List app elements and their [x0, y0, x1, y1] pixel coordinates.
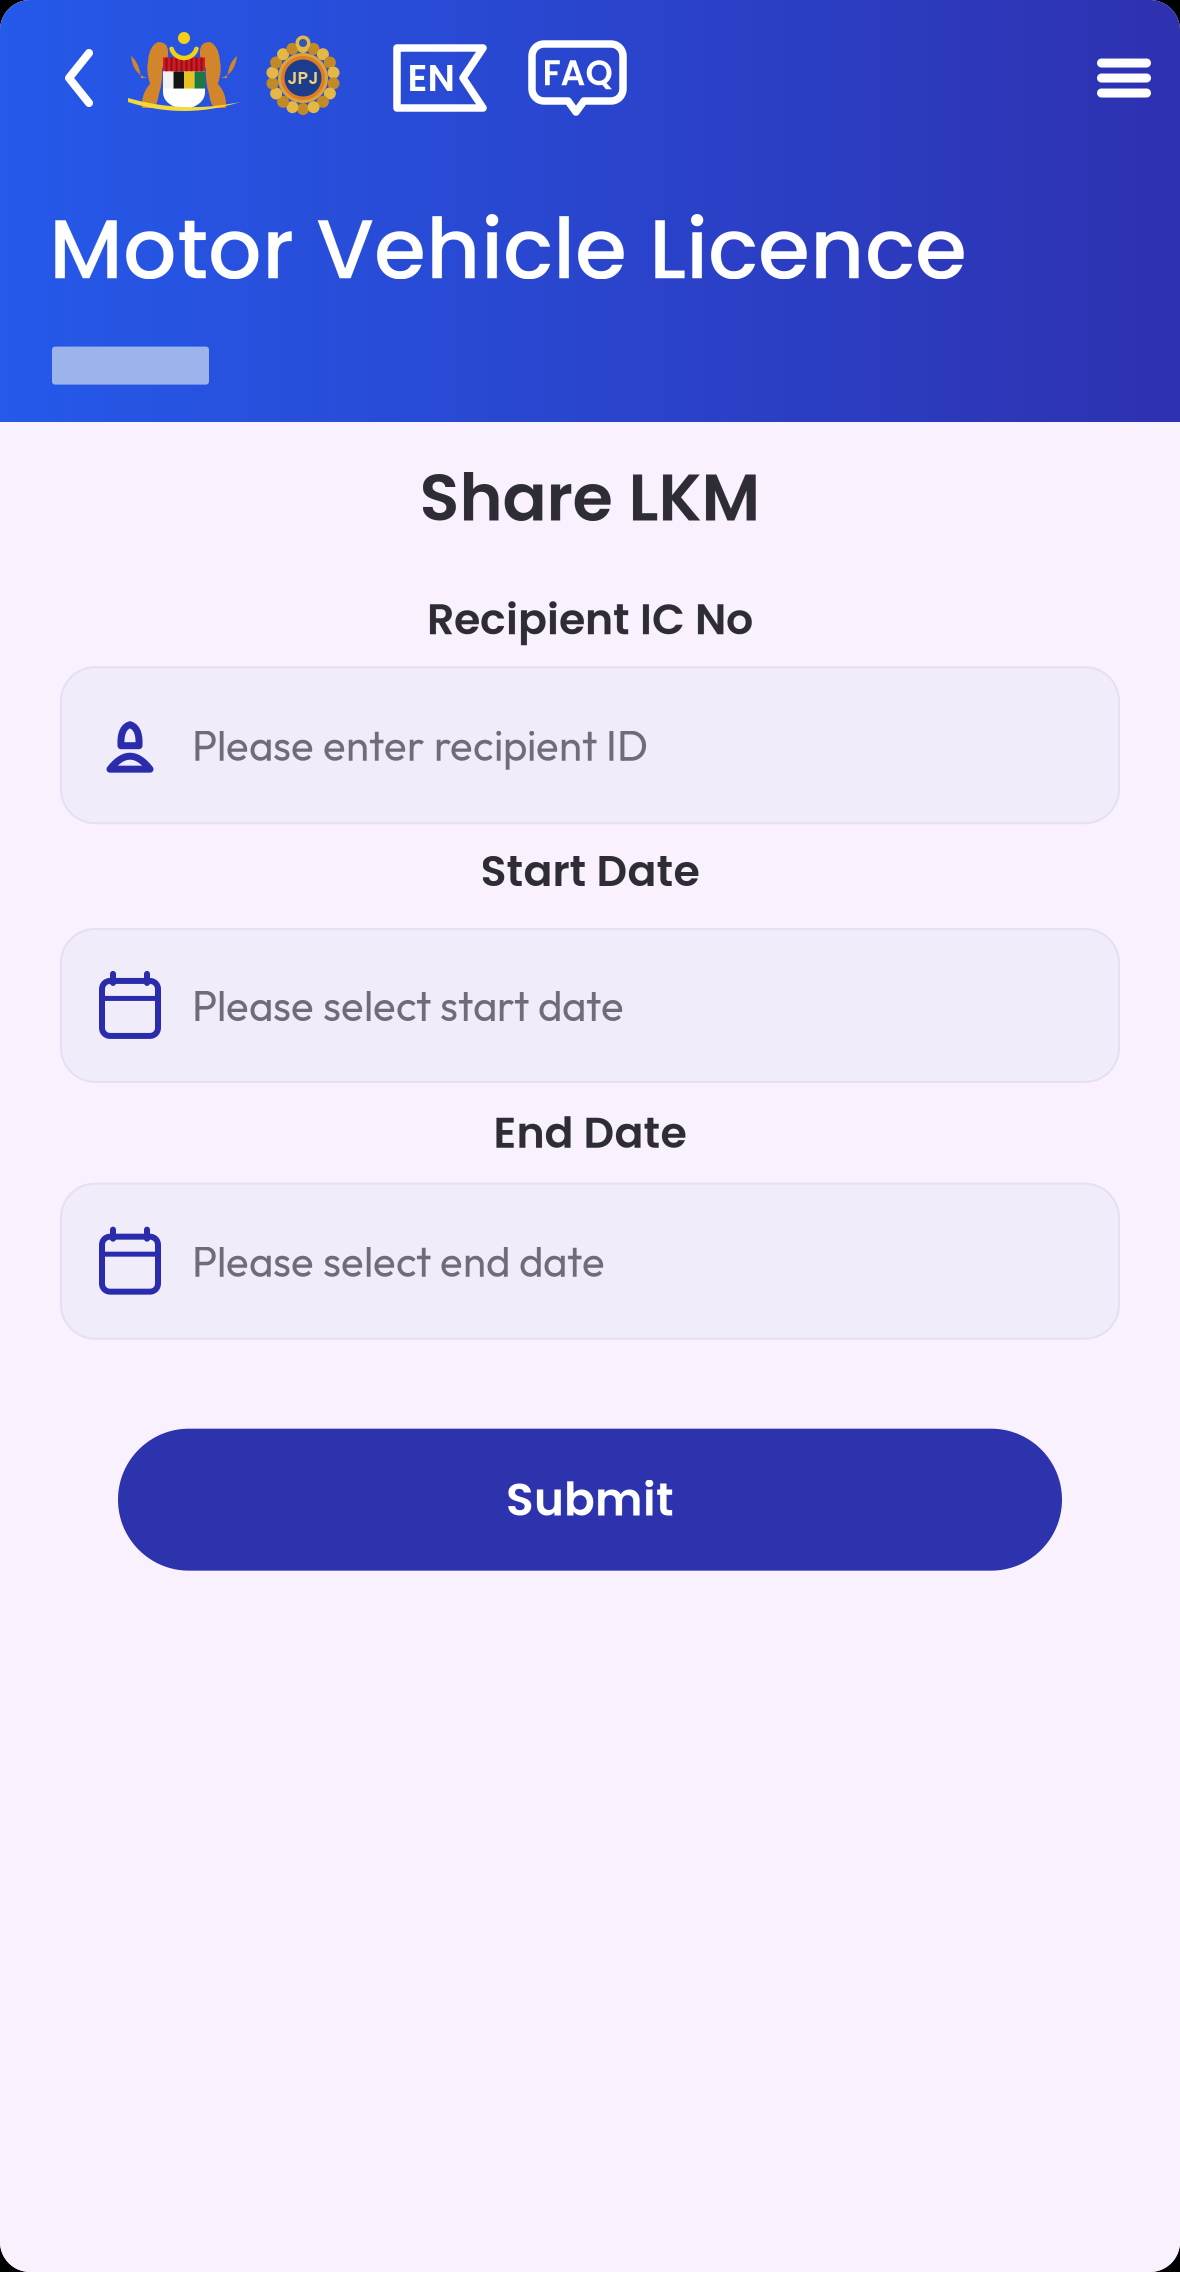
- staticText: EN: [407, 52, 454, 104]
- staticText: Share LKM: [419, 452, 760, 543]
- button[interactable]: Please enter recipient ID: [61, 667, 1119, 823]
- button[interactable]: Please select end date: [61, 1184, 1119, 1339]
- button[interactable]: Please select start date: [61, 929, 1119, 1082]
- button[interactable]: FAQ: [528, 40, 627, 116]
- staticText: Please select start date: [192, 979, 624, 1032]
- staticText: JPJ: [287, 66, 318, 90]
- button[interactable]: Submit: [118, 1429, 1062, 1571]
- staticText: FAQ: [542, 49, 612, 97]
- staticText: Please select end date: [192, 1235, 605, 1288]
- staticText: Recipient IC No: [427, 589, 753, 649]
- button[interactable]: Menu: [1085, 46, 1163, 109]
- staticText: Start Date: [480, 841, 699, 901]
- button[interactable]: Language: English: [393, 44, 487, 112]
- staticText: Motor Vehicle Licence: [49, 190, 967, 308]
- button[interactable]: Back: [50, 38, 108, 118]
- staticText: End Date: [493, 1103, 686, 1163]
- staticText: Submit: [506, 1468, 674, 1531]
- staticText: Please enter recipient ID: [192, 719, 648, 772]
